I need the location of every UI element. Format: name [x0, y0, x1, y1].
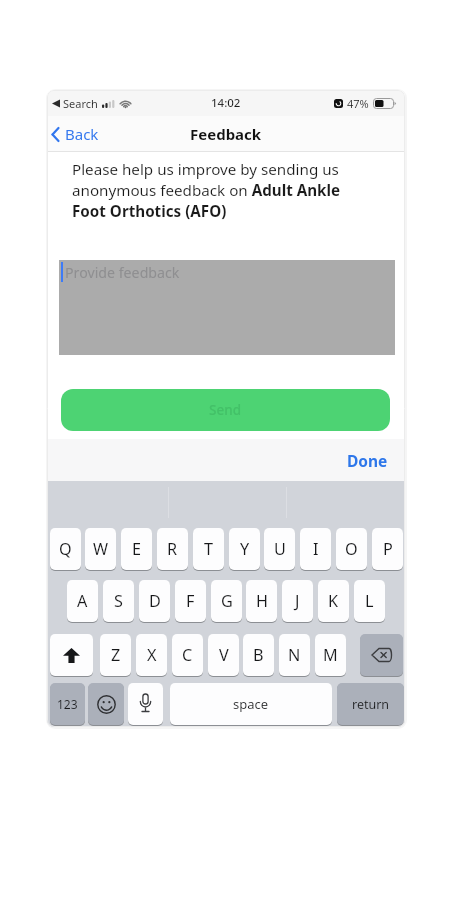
staticText: space: [233, 695, 269, 713]
staticText: N: [288, 644, 301, 666]
staticText: T: [204, 538, 214, 560]
button[interactable]: J: [282, 580, 313, 622]
button[interactable]: N: [279, 634, 310, 676]
button[interactable]: K: [318, 580, 349, 622]
button[interactable]: Send: [61, 389, 390, 431]
button[interactable]: I: [300, 528, 331, 570]
staticText: Search: [63, 96, 98, 111]
button[interactable]: Q: [50, 528, 81, 570]
button[interactable]: F: [175, 580, 206, 622]
staticText: V: [219, 644, 229, 666]
staticText: L: [365, 590, 374, 612]
staticText: Please help us improve by sending us ano…: [72, 159, 392, 222]
button[interactable]: Y: [229, 528, 260, 570]
button[interactable]: P: [372, 528, 403, 570]
staticText: K: [328, 590, 339, 612]
staticText: D: [149, 590, 161, 612]
staticText: E: [132, 538, 142, 560]
staticText: I: [313, 538, 319, 560]
button[interactable]: Back: [51, 124, 99, 144]
staticText: 123: [57, 696, 78, 712]
button[interactable]: Z: [100, 634, 131, 676]
button[interactable]: L: [354, 580, 385, 622]
staticText: P: [383, 538, 393, 560]
button[interactable]: V: [208, 634, 239, 676]
staticText: M: [323, 644, 338, 666]
button[interactable]: S: [103, 580, 134, 622]
staticText: F: [186, 590, 195, 612]
staticText: A: [77, 590, 88, 612]
button[interactable]: space: [170, 683, 332, 725]
button[interactable]: H: [246, 580, 277, 622]
button[interactable]: T: [193, 528, 224, 570]
staticText: Provide feedback: [65, 263, 180, 282]
button[interactable]: C: [172, 634, 203, 676]
button[interactable]: M: [315, 634, 346, 676]
button[interactable]: [50, 634, 93, 676]
button[interactable]: [128, 683, 163, 725]
staticText: 14:02: [211, 95, 241, 111]
staticText: O: [345, 538, 358, 560]
staticText: Send: [209, 401, 242, 419]
button[interactable]: G: [211, 580, 242, 622]
staticText: H: [256, 590, 268, 612]
button[interactable]: [360, 634, 403, 676]
staticText: Back: [65, 124, 99, 144]
button[interactable]: D: [139, 580, 170, 622]
staticText: X: [147, 644, 157, 666]
button[interactable]: U: [264, 528, 295, 570]
staticText: C: [182, 644, 193, 666]
button[interactable]: return: [337, 683, 404, 725]
button[interactable]: Provide feedback: [59, 260, 395, 355]
staticText: Z: [111, 644, 121, 666]
staticText: J: [295, 590, 300, 612]
staticText: Feedback: [190, 124, 262, 144]
staticText: B: [253, 644, 264, 666]
staticText: 47%: [347, 96, 369, 111]
staticText: Y: [240, 538, 250, 560]
button[interactable]: R: [157, 528, 188, 570]
button[interactable]: B: [243, 634, 274, 676]
staticText: W: [93, 538, 109, 560]
staticText: return: [352, 696, 390, 713]
button[interactable]: 123: [50, 683, 85, 725]
button[interactable]: O: [336, 528, 367, 570]
button[interactable]: X: [136, 634, 167, 676]
staticText: Done: [347, 450, 388, 471]
staticText: Q: [59, 538, 72, 560]
button[interactable]: E: [121, 528, 152, 570]
staticText: R: [167, 538, 178, 560]
staticText: G: [221, 590, 233, 612]
button[interactable]: Done: [347, 450, 388, 471]
staticText: S: [114, 590, 123, 612]
staticText: U: [274, 538, 286, 560]
button[interactable]: W: [85, 528, 116, 570]
button[interactable]: A: [67, 580, 98, 622]
button[interactable]: [88, 683, 124, 725]
